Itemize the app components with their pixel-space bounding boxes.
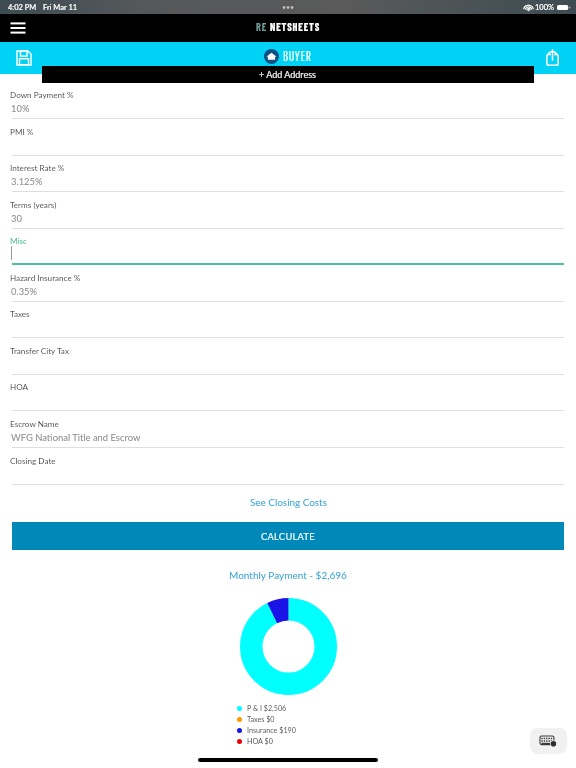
button[interactable]: Misc <box>0 228 576 265</box>
button[interactable]: Share <box>540 46 564 70</box>
staticText: Monthly Payment - $2,696 <box>229 569 347 581</box>
staticText: + Add Address <box>259 69 317 80</box>
button[interactable]: Menu <box>6 16 30 40</box>
button[interactable]: Transfer City Tax <box>0 338 576 375</box>
staticText: Escrow Name <box>10 419 59 429</box>
button[interactable]: CALCULATE <box>12 522 564 550</box>
staticText: Misc <box>10 236 27 246</box>
staticText: Interest Rate % <box>10 163 65 173</box>
staticText: NETSHEETS <box>270 21 321 33</box>
staticText: 3.125% <box>11 176 43 187</box>
staticText: See Closing Costs <box>250 496 327 508</box>
button[interactable]: Down Payment % <box>0 82 576 119</box>
button[interactable]: Interest Rate % <box>0 155 576 192</box>
staticText: Fri Mar 11 <box>43 3 78 12</box>
button[interactable]: PMI % <box>0 119 576 156</box>
staticText: P & I $2,506 <box>247 704 287 713</box>
staticText: ••• <box>282 3 295 11</box>
button[interactable]: + Add Address <box>42 66 534 83</box>
staticText: 10% <box>11 103 30 114</box>
staticText: BUYER <box>283 48 312 64</box>
button[interactable]: Save <box>13 47 35 69</box>
staticText: Insurance $190 <box>247 726 296 735</box>
staticText: 100% <box>535 3 555 12</box>
staticText: RE <box>256 21 268 33</box>
staticText: Hazard Insurance % <box>10 273 81 283</box>
button[interactable]: Hazard Insurance % <box>0 265 576 302</box>
staticText: HOA $0 <box>247 737 273 746</box>
staticText: 30 <box>11 213 22 224</box>
staticText: Transfer City Tax <box>10 346 69 356</box>
staticText: WFG National Title and Escrow <box>11 432 141 443</box>
staticText: Taxes $0 <box>247 715 275 724</box>
staticText: Terms (years) <box>10 200 57 210</box>
button[interactable]: Terms (years) <box>0 192 576 229</box>
button[interactable]: Taxes <box>0 301 576 338</box>
button[interactable]: Escrow Name <box>0 411 576 448</box>
staticText: Closing Date <box>10 456 56 466</box>
staticText: Down Payment % <box>10 90 74 100</box>
staticText: Taxes <box>10 309 30 319</box>
button[interactable]: HOA <box>0 374 576 411</box>
button[interactable]: See Closing Costs <box>0 492 576 511</box>
button[interactable]: Hide keyboard <box>530 728 567 754</box>
staticText: HOA <box>10 382 29 392</box>
staticText: PMI % <box>10 127 34 137</box>
staticText: 4:02 PM <box>8 3 37 12</box>
button[interactable]: Closing Date <box>0 448 576 485</box>
staticText: CALCULATE <box>261 531 315 542</box>
staticText: 0.35% <box>11 286 38 297</box>
